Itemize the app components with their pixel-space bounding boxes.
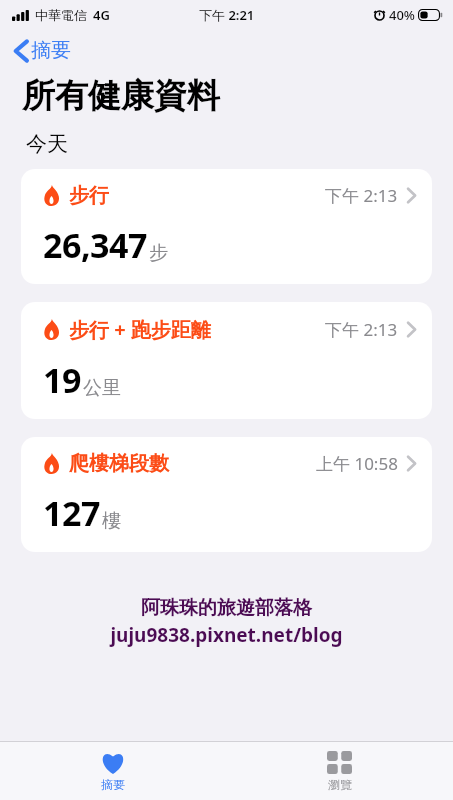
staticText: 瀏覽 bbox=[328, 777, 352, 792]
staticText: 爬樓梯段數 bbox=[69, 451, 169, 476]
button[interactable]: 步行 + 跑步距離 bbox=[21, 302, 432, 419]
staticText: 19 bbox=[43, 357, 81, 403]
staticText: 127 bbox=[43, 490, 100, 536]
staticText: 阿珠珠的旅遊部落格 bbox=[141, 596, 312, 620]
staticText: 今天 bbox=[26, 131, 68, 157]
staticText: 樓 bbox=[102, 509, 121, 533]
staticText: 步行 + 跑步距離 bbox=[69, 316, 211, 343]
button[interactable]: 爬樓梯段數 bbox=[21, 437, 432, 552]
button[interactable]: 摘要 bbox=[0, 742, 226, 800]
button[interactable]: 摘要 bbox=[10, 36, 75, 65]
staticText: 公里 bbox=[83, 376, 121, 400]
button[interactable]: 步行 bbox=[21, 169, 432, 284]
staticText: 下午 2:13 bbox=[325, 318, 398, 341]
staticText: 摘要 bbox=[101, 777, 125, 792]
staticText: 下午 2:21 bbox=[199, 6, 255, 24]
staticText: 下午 2:13 bbox=[325, 184, 398, 207]
staticText: 步行 bbox=[69, 183, 109, 208]
staticText: 中華電信 bbox=[35, 7, 87, 23]
staticText: 所有健康資料 bbox=[22, 75, 220, 117]
staticText: 4G bbox=[93, 6, 110, 24]
button[interactable]: 瀏覽 bbox=[226, 742, 453, 800]
staticText: 上午 10:58 bbox=[316, 452, 398, 475]
staticText: juju9838.pixnet.net/blog bbox=[110, 622, 343, 648]
staticText: 步 bbox=[149, 241, 168, 265]
staticText: 26,347 bbox=[43, 222, 147, 268]
staticText: 摘要 bbox=[31, 38, 71, 63]
staticText: 40% bbox=[389, 6, 415, 24]
